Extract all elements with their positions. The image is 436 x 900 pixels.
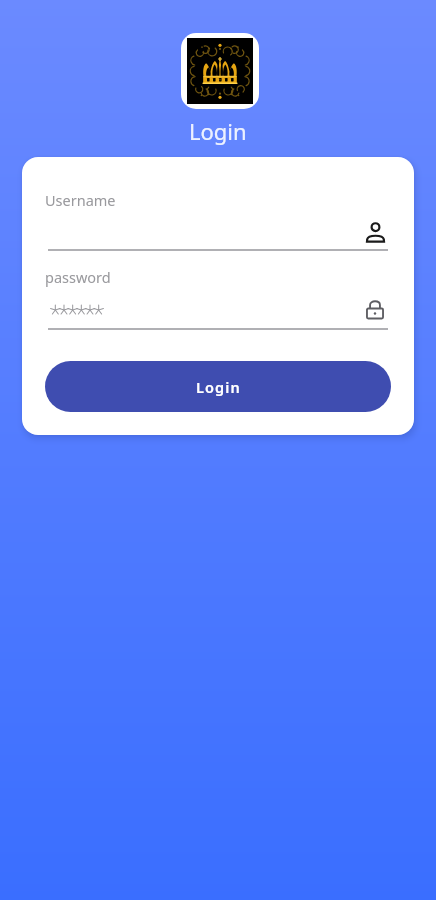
button[interactable]: Username	[45, 185, 391, 251]
button[interactable]: password	[45, 262, 391, 329]
staticText: Username	[45, 190, 116, 210]
other: Password	[364, 298, 386, 320]
staticText: password	[45, 267, 111, 287]
staticText: Login	[196, 377, 241, 397]
other: User	[365, 222, 386, 243]
button[interactable]: Login	[45, 361, 391, 412]
other: App logo	[187, 38, 253, 104]
staticText: Login	[189, 116, 247, 146]
